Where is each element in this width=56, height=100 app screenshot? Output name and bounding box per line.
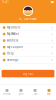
- button[interactable]: Home: [0, 88, 14, 97]
- staticText: My Coupon: [7, 45, 23, 49]
- button[interactable]: Log Out: [2, 70, 54, 77]
- staticText: 9:41: [2, 0, 9, 4]
- button[interactable]: My Coupon: [0, 44, 56, 50]
- staticText: Sort: [18, 92, 23, 96]
- staticText: My Wallet: [7, 32, 19, 36]
- button[interactable]: Me: [42, 88, 56, 97]
- staticText: Hi, Username: [19, 17, 37, 21]
- button[interactable]: Sort: [14, 88, 28, 97]
- staticText: Home: [3, 92, 11, 96]
- button[interactable]: Settings: [0, 57, 56, 63]
- staticText: My Orders: [7, 26, 20, 29]
- button[interactable]: Address: [0, 37, 56, 44]
- button[interactable]: Help: [0, 50, 56, 57]
- staticText: Help: [7, 52, 14, 55]
- button[interactable]: My Wallet: [0, 31, 56, 37]
- staticText: Log Out: [22, 72, 33, 75]
- staticText: Settings: [7, 58, 18, 62]
- staticText: Address: [7, 39, 18, 42]
- button[interactable]: Cart: [28, 88, 42, 97]
- staticText: Cart: [32, 92, 37, 96]
- staticText: Me: [47, 92, 51, 96]
- button[interactable]: My Orders: [0, 24, 56, 31]
